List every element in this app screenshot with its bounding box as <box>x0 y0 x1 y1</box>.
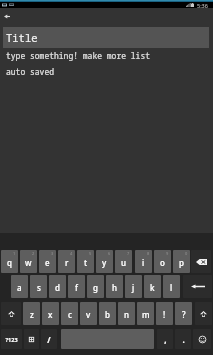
staticText: u <box>121 257 127 268</box>
staticText: t <box>84 257 88 268</box>
staticText: Title <box>6 31 38 45</box>
button[interactable]: z <box>23 302 40 325</box>
staticText: ! <box>163 309 166 320</box>
staticText: 8 <box>147 251 150 256</box>
staticText: 5:36 <box>197 2 208 8</box>
button[interactable]: Enter <box>183 275 212 298</box>
button[interactable]: f <box>68 275 85 298</box>
button[interactable]: x <box>42 302 59 325</box>
staticText: z <box>30 309 34 320</box>
button[interactable]: Back <box>0 10 13 23</box>
staticText: e <box>45 257 50 268</box>
button[interactable]: m <box>137 302 154 325</box>
button[interactable]: ?123 <box>1 329 22 349</box>
staticText: v <box>86 309 91 320</box>
staticText: k <box>150 282 155 293</box>
button[interactable]: h <box>106 275 123 298</box>
staticText: h <box>112 282 118 293</box>
staticText: 5 <box>89 251 92 256</box>
button[interactable]: s <box>30 275 47 298</box>
button[interactable]: 8 <box>135 250 152 273</box>
button[interactable]: 1 <box>1 250 18 273</box>
staticText: 4 <box>70 251 73 256</box>
button[interactable]: 9 <box>154 250 171 273</box>
button[interactable]: , <box>157 329 173 349</box>
button[interactable]: Switch keyboard <box>24 329 39 349</box>
staticText: p <box>179 257 184 268</box>
button[interactable]: 3 <box>39 250 56 273</box>
staticText: c <box>68 309 72 320</box>
staticText: a <box>17 282 22 293</box>
button[interactable]: j <box>125 275 142 298</box>
staticText: l <box>170 282 173 293</box>
staticText: r <box>65 257 69 268</box>
staticText: i <box>142 257 145 268</box>
staticText: 2 <box>32 251 35 256</box>
staticText: n <box>124 309 130 320</box>
staticText: o <box>160 257 165 268</box>
staticText: s <box>37 282 41 293</box>
button[interactable]: k <box>144 275 161 298</box>
button[interactable]: . <box>175 329 191 349</box>
button[interactable]: Title <box>3 27 209 48</box>
button[interactable]: 2 <box>20 250 37 273</box>
staticText: ?123 <box>5 336 18 343</box>
button[interactable]: Shift <box>195 302 212 325</box>
staticText: g <box>93 282 98 293</box>
staticText: d <box>55 282 60 293</box>
button[interactable]: a <box>11 275 28 298</box>
staticText: , <box>164 334 167 345</box>
button[interactable]: 7 <box>115 250 132 273</box>
button[interactable]: l <box>163 275 180 298</box>
staticText: j <box>132 282 135 293</box>
button[interactable]: Backspace <box>191 250 211 273</box>
staticText: 9 <box>166 251 169 256</box>
button[interactable]: d <box>49 275 66 298</box>
staticText: auto saved <box>6 66 54 77</box>
staticText: m <box>142 309 150 320</box>
button[interactable]: b <box>99 302 116 325</box>
staticText: q <box>7 257 12 268</box>
button[interactable]: 5 <box>77 250 94 273</box>
staticText: b <box>105 309 110 320</box>
staticText: 3 <box>51 251 54 256</box>
button[interactable]: g <box>87 275 104 298</box>
staticText: ? <box>182 309 186 320</box>
button[interactable]: c <box>61 302 78 325</box>
staticText: 7 <box>127 251 130 256</box>
button[interactable]: / <box>41 329 57 349</box>
staticText: 1 <box>13 251 16 256</box>
button[interactable]: ? <box>175 302 192 325</box>
staticText: 6 <box>108 251 111 256</box>
button[interactable]: ! <box>156 302 173 325</box>
button[interactable]: Shift <box>1 302 21 325</box>
button[interactable]: n <box>118 302 135 325</box>
staticText: . <box>182 334 185 345</box>
button[interactable]: 6 <box>96 250 113 273</box>
staticText: 0 <box>185 251 188 256</box>
staticText: type something! make more list <box>6 50 150 61</box>
button[interactable]: v <box>80 302 97 325</box>
button[interactable]: Emoji <box>193 329 211 349</box>
staticText: x <box>48 309 53 320</box>
staticText: / <box>47 334 51 345</box>
staticText: w <box>25 257 32 268</box>
staticText: f <box>75 282 78 293</box>
button[interactable]: 0 <box>173 250 190 273</box>
staticText: y <box>102 257 107 268</box>
button[interactable]: 4 <box>58 250 75 273</box>
